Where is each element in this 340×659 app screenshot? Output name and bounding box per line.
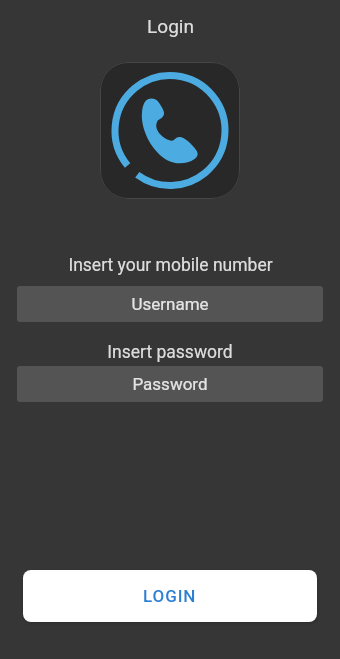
staticText: Username <box>131 294 209 314</box>
staticText: Insert password <box>107 342 233 363</box>
staticText: Insert your mobile number <box>68 255 273 276</box>
button[interactable]: LOGIN <box>23 570 317 622</box>
other: App logo <box>100 62 240 199</box>
staticText: Login <box>147 15 194 37</box>
button[interactable]: Password <box>17 366 323 402</box>
staticText: Password <box>132 374 208 394</box>
button[interactable]: Username <box>17 286 323 322</box>
staticText: LOGIN <box>143 586 197 606</box>
